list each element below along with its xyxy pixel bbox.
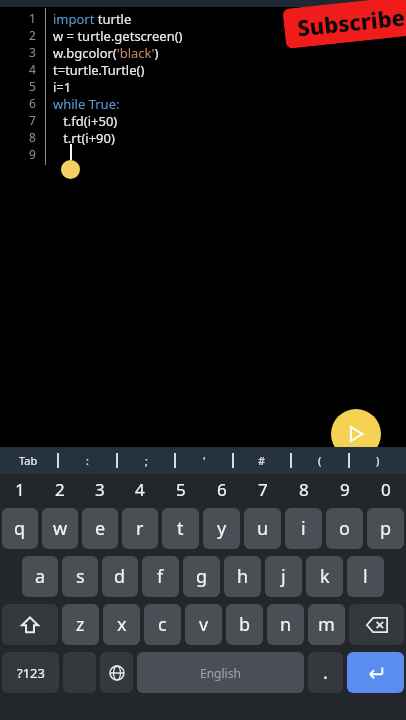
- staticText: u: [257, 516, 269, 541]
- staticText: #: [258, 453, 266, 468]
- staticText: a: [35, 564, 46, 589]
- button[interactable]: f: [142, 556, 179, 597]
- staticText: n: [280, 612, 292, 637]
- staticText: p: [380, 516, 392, 541]
- button[interactable]: b: [226, 604, 263, 645]
- staticText: j: [281, 564, 286, 589]
- staticText: i: [301, 516, 306, 541]
- button[interactable]: s: [62, 556, 98, 597]
- button[interactable]: y: [203, 508, 240, 549]
- button[interactable]: Tab: [0, 447, 57, 474]
- staticText: b: [239, 612, 251, 637]
- staticText: h: [237, 564, 249, 589]
- staticText: m: [318, 612, 335, 637]
- staticText: w = turtle.getscreen(): [53, 27, 183, 45]
- button[interactable]: t: [162, 508, 199, 549]
- staticText: 9: [340, 478, 350, 501]
- staticText: 7: [29, 112, 36, 128]
- button[interactable]: n: [267, 604, 304, 645]
- button[interactable]: g: [183, 556, 220, 597]
- staticText: 2: [55, 478, 65, 501]
- button[interactable]: j: [265, 556, 302, 597]
- staticText: (: [318, 453, 322, 468]
- button[interactable]: .: [308, 652, 343, 693]
- button[interactable]: 8: [283, 474, 324, 504]
- staticText: 3: [29, 44, 36, 60]
- staticText: while True:: [53, 95, 120, 113]
- button[interactable]: v: [185, 604, 222, 645]
- button[interactable]: 1: [0, 474, 40, 504]
- button[interactable]: a: [22, 556, 58, 597]
- button[interactable]: Enter: [347, 652, 404, 693]
- button[interactable]: 2: [40, 474, 80, 504]
- button[interactable]: 5: [160, 474, 201, 504]
- button[interactable]: ': [176, 447, 232, 474]
- button[interactable]: Run: [331, 409, 381, 459]
- staticText: 8: [299, 478, 309, 501]
- button[interactable]: u: [244, 508, 281, 549]
- staticText: q: [14, 516, 26, 541]
- staticText: 5: [176, 478, 186, 501]
- staticText: y: [217, 516, 227, 541]
- button[interactable]: c: [144, 604, 181, 645]
- staticText: English: [200, 665, 241, 681]
- staticText: 7: [258, 478, 268, 501]
- staticText: 0: [381, 478, 391, 501]
- staticText: ;: [145, 453, 148, 468]
- staticText: 8: [29, 129, 36, 145]
- button[interactable]: o: [326, 508, 363, 549]
- button[interactable]: Backspace: [349, 604, 404, 645]
- staticText: t: [177, 516, 184, 541]
- staticText: w: [53, 516, 68, 541]
- button[interactable]: ;: [118, 447, 174, 474]
- button[interactable]: w: [42, 508, 78, 549]
- staticText: t.fd(i+50): [53, 112, 118, 130]
- button[interactable]: 0: [365, 474, 406, 504]
- button[interactable]: z: [62, 604, 99, 645]
- staticText: k: [320, 564, 330, 589]
- button[interactable]: r: [122, 508, 158, 549]
- staticText: o: [339, 516, 350, 541]
- button[interactable]: e: [82, 508, 118, 549]
- button[interactable]: i: [285, 508, 322, 549]
- button[interactable]: p: [367, 508, 404, 549]
- button[interactable]: 9: [324, 474, 365, 504]
- button[interactable]: ): [350, 447, 406, 474]
- staticText: c: [158, 612, 167, 637]
- staticText: import turtle: [53, 10, 132, 28]
- button[interactable]: x: [103, 604, 140, 645]
- button[interactable]: q: [2, 508, 38, 549]
- staticText: 3: [95, 478, 105, 501]
- button[interactable]: 7: [242, 474, 283, 504]
- button[interactable]: d: [102, 556, 138, 597]
- staticText: ?123: [17, 664, 45, 682]
- button[interactable]: Shift: [2, 604, 58, 645]
- button[interactable]: English: [137, 652, 304, 693]
- button[interactable]: Change language: [100, 652, 133, 693]
- button[interactable]: k: [306, 556, 343, 597]
- staticText: i=1: [53, 78, 72, 96]
- staticText: 6: [29, 95, 36, 111]
- staticText: 4: [29, 61, 36, 77]
- button[interactable]: (: [292, 447, 348, 474]
- button[interactable]: 4: [120, 474, 160, 504]
- button[interactable]: ?123: [2, 652, 59, 693]
- staticText: ): [376, 453, 380, 468]
- staticText: 5: [29, 78, 36, 94]
- button[interactable]: 3: [80, 474, 120, 504]
- button[interactable]: #: [234, 447, 290, 474]
- staticText: Subscribe: [296, 1, 406, 42]
- button[interactable]: :: [59, 447, 116, 474]
- staticText: 6: [217, 478, 227, 501]
- staticText: 1: [29, 10, 36, 26]
- staticText: g: [196, 564, 208, 589]
- button[interactable]: 6: [201, 474, 242, 504]
- button[interactable]: m: [308, 604, 345, 645]
- staticText: f: [157, 564, 164, 589]
- button[interactable]: h: [224, 556, 261, 597]
- button[interactable]: Subscribe: [296, 1, 406, 42]
- button[interactable]: l: [347, 556, 384, 597]
- staticText: 4: [135, 478, 145, 501]
- staticText: x: [117, 612, 127, 637]
